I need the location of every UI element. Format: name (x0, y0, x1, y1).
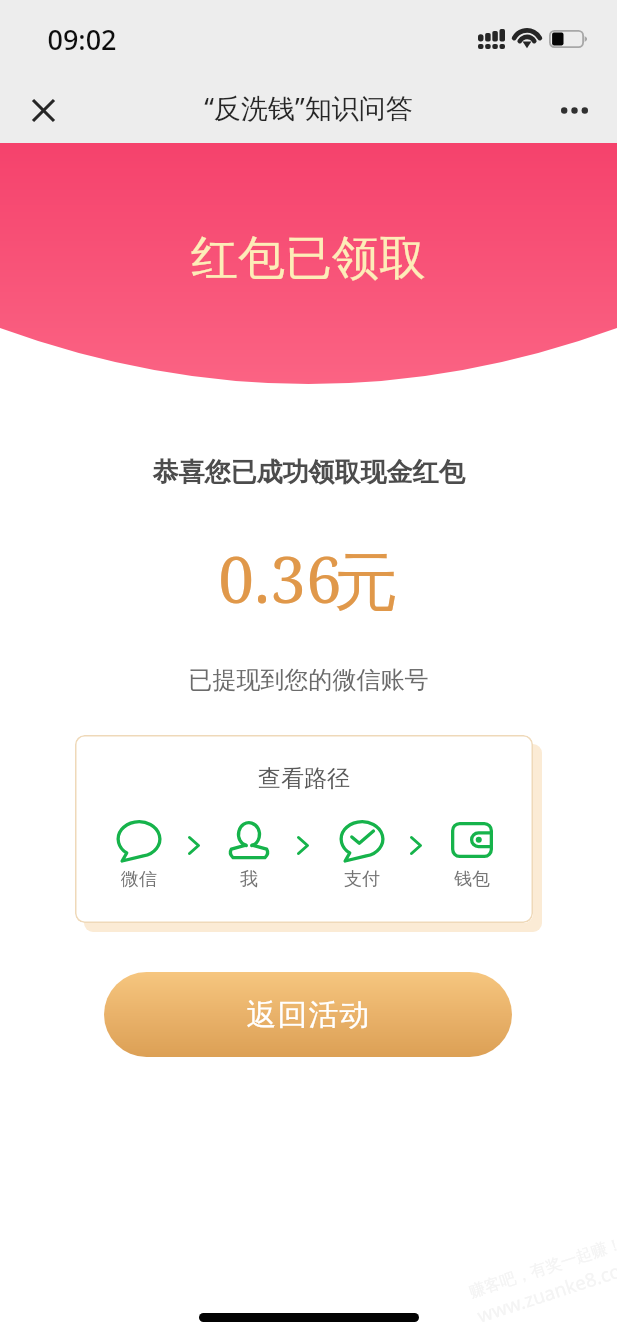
button[interactable]: 支付 (322, 820, 402, 891)
staticText: 钱包 (454, 868, 490, 891)
staticText: 返回活动 (246, 996, 370, 1034)
button[interactable]: 微信 (99, 820, 179, 891)
button[interactable]: 返回活动 (104, 972, 512, 1057)
staticText: 赚客吧，有奖一起赚！ (467, 1234, 617, 1302)
staticText: “反洗钱”知识问答 (204, 89, 413, 126)
staticText: 09:02 (47, 21, 117, 58)
staticText: 支付 (344, 868, 380, 891)
staticText: 我 (240, 868, 258, 891)
staticText: 查看路径 (75, 764, 533, 793)
button[interactable]: More options (549, 85, 599, 135)
button[interactable]: 我 (209, 820, 289, 891)
staticText: 0.36 (218, 535, 342, 622)
button[interactable]: 钱包 (432, 820, 512, 891)
staticText: 已提现到您的微信账号 (0, 665, 617, 695)
button[interactable]: Close (18, 85, 68, 135)
staticText: 微信 (121, 868, 157, 891)
staticText: 恭喜您已成功领取现金红包 (0, 456, 617, 489)
staticText: 元 (334, 542, 398, 623)
staticText: 红包已领取 (0, 229, 617, 288)
staticText: www.zuanke8.com (473, 1252, 617, 1329)
